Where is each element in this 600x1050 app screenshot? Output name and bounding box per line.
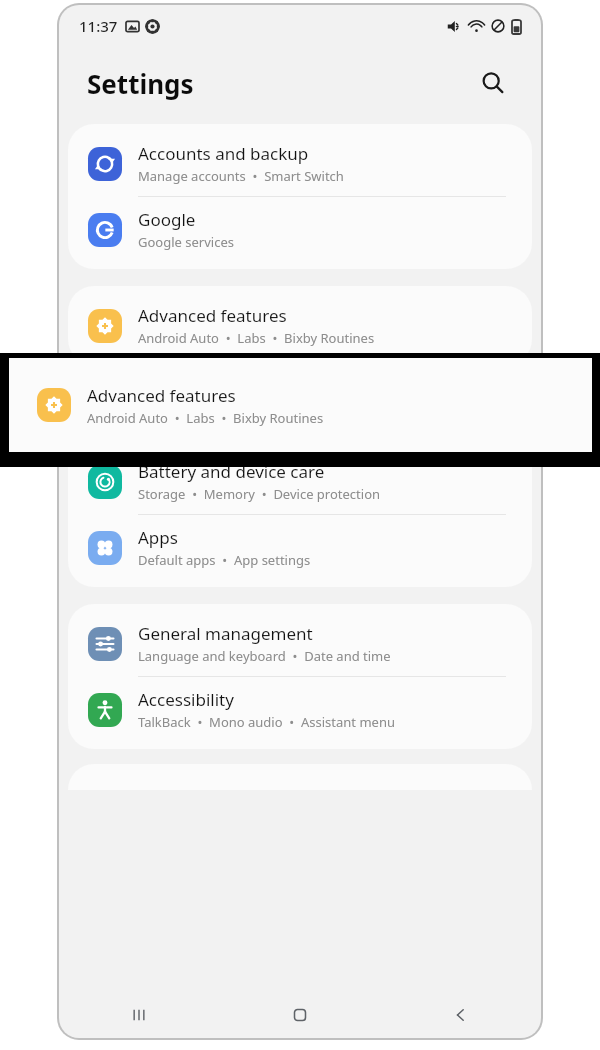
staticText: Digital Wellbeing and parental controls [138, 395, 431, 417]
button[interactable]: Back [380, 992, 541, 1038]
staticText: Screen time • App timers • Bedtime mode [138, 419, 404, 437]
staticText: TalkBack • Mono audio • Assistant menu [138, 713, 395, 731]
staticText: Advanced features [138, 304, 287, 327]
staticText: Settings [87, 66, 194, 101]
button[interactable]: Accounts and backup [68, 131, 532, 196]
staticText: Android Auto • Labs • Bixby Routines [87, 409, 324, 427]
button[interactable]: Recent apps [59, 992, 219, 1038]
staticText: Advanced features [87, 384, 236, 407]
staticText: Language and keyboard • Date and time [138, 647, 391, 665]
staticText: Manage accounts • Smart Switch [138, 167, 344, 185]
button[interactable]: Home [219, 992, 380, 1038]
button[interactable]: Advanced features [9, 358, 592, 452]
staticText: Accounts and backup [138, 142, 309, 165]
staticText: Storage • Memory • Device protection [138, 485, 381, 503]
button[interactable]: General management [68, 611, 532, 676]
staticText: Apps [138, 526, 178, 549]
button[interactable]: Search [473, 63, 513, 103]
button[interactable]: Advanced features [68, 293, 532, 358]
staticText: General management [138, 622, 313, 645]
staticText: Default apps • App settings [138, 551, 311, 569]
button[interactable]: Apps [68, 515, 532, 580]
button[interactable]: Accessibility [68, 677, 532, 742]
staticText: 11:37 [79, 16, 118, 36]
button[interactable]: Battery and device care [68, 449, 532, 514]
staticText: Accessibility [138, 688, 234, 711]
staticText: Battery and device care [138, 460, 325, 483]
staticText: Android Auto • Labs • Bixby Routines [138, 329, 375, 347]
button[interactable]: Google [68, 197, 532, 262]
staticText: Google [138, 208, 196, 231]
button[interactable]: Digital Wellbeing and parental controls [68, 384, 532, 448]
staticText: Google services [138, 233, 234, 251]
